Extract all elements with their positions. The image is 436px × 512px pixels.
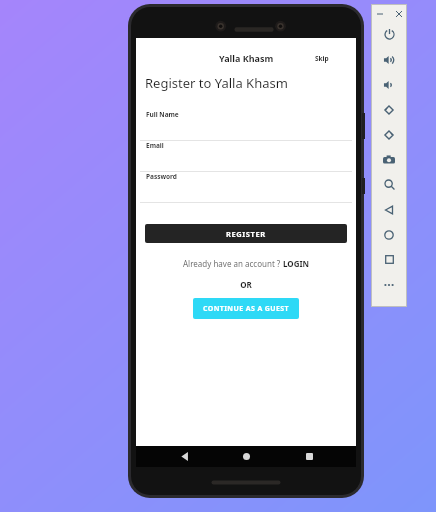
button[interactable]: Close bbox=[392, 7, 405, 20]
button[interactable]: Rotate right bbox=[372, 122, 406, 147]
staticText: REGISTER bbox=[226, 229, 266, 239]
button[interactable]: REGISTER bbox=[145, 224, 347, 243]
button[interactable]: Screenshot bbox=[372, 147, 406, 172]
button[interactable]: Volume down bbox=[372, 72, 406, 97]
button[interactable]: More bbox=[372, 272, 406, 297]
button[interactable]: CONTINUE AS A GUEST bbox=[193, 298, 299, 319]
staticText: Email bbox=[146, 141, 164, 150]
button[interactable]: Home bbox=[372, 222, 406, 247]
button[interactable]: Volume up bbox=[372, 47, 406, 72]
button[interactable]: Back bbox=[169, 446, 199, 467]
staticText: Yalla Khasm bbox=[219, 52, 274, 64]
button[interactable]: Password bbox=[136, 172, 356, 203]
button[interactable]: Full Name bbox=[136, 110, 356, 141]
staticText: OR bbox=[136, 279, 356, 290]
button[interactable]: Minimize bbox=[373, 7, 386, 20]
staticText: Password bbox=[146, 172, 177, 181]
button[interactable]: Zoom bbox=[372, 172, 406, 197]
button[interactable]: Rotate left bbox=[372, 97, 406, 122]
button[interactable]: Back bbox=[372, 197, 406, 222]
button[interactable]: Power bbox=[372, 22, 406, 47]
button[interactable]: Skip bbox=[312, 52, 332, 65]
staticText: LOGIN bbox=[283, 258, 310, 269]
staticText: Already have an account ? bbox=[183, 258, 283, 269]
button[interactable]: Home bbox=[231, 446, 261, 467]
staticText: Register to Yalla Khasm bbox=[145, 74, 288, 92]
button[interactable]: Overview bbox=[372, 247, 406, 272]
staticText: CONTINUE AS A GUEST bbox=[203, 304, 290, 314]
staticText: Full Name bbox=[146, 110, 179, 119]
button[interactable]: Recent apps bbox=[294, 446, 324, 467]
button[interactable]: LOGIN bbox=[283, 258, 310, 269]
staticText: Skip bbox=[315, 54, 329, 63]
button[interactable]: Email bbox=[136, 141, 356, 172]
